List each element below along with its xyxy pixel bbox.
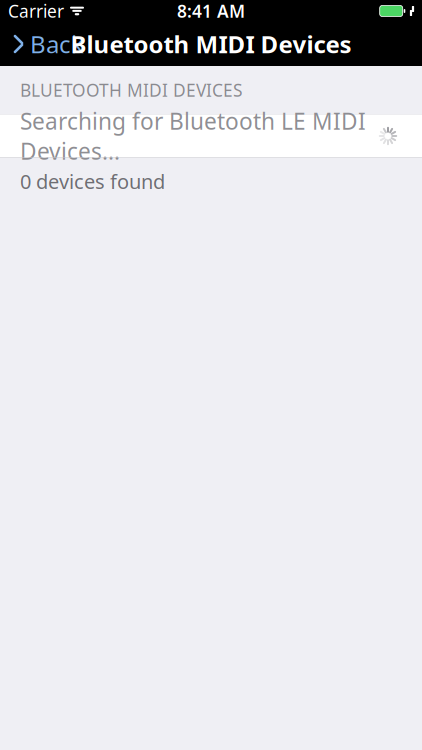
staticText: Bluetooth MIDI Devices	[70, 28, 351, 60]
staticText: Back	[30, 28, 84, 60]
staticText: 0 devices found	[20, 168, 165, 195]
staticText: Searching for Bluetooth LE MIDI Devices.…	[20, 106, 366, 166]
staticText: 8:41 AM	[177, 0, 245, 22]
staticText: BLUETOOTH MIDI DEVICES	[20, 78, 243, 101]
button[interactable]: Searching for Bluetooth LE MIDI Devices.…	[0, 114, 422, 157]
button[interactable]: Back	[0, 23, 94, 65]
staticText: Carrier	[8, 0, 64, 22]
